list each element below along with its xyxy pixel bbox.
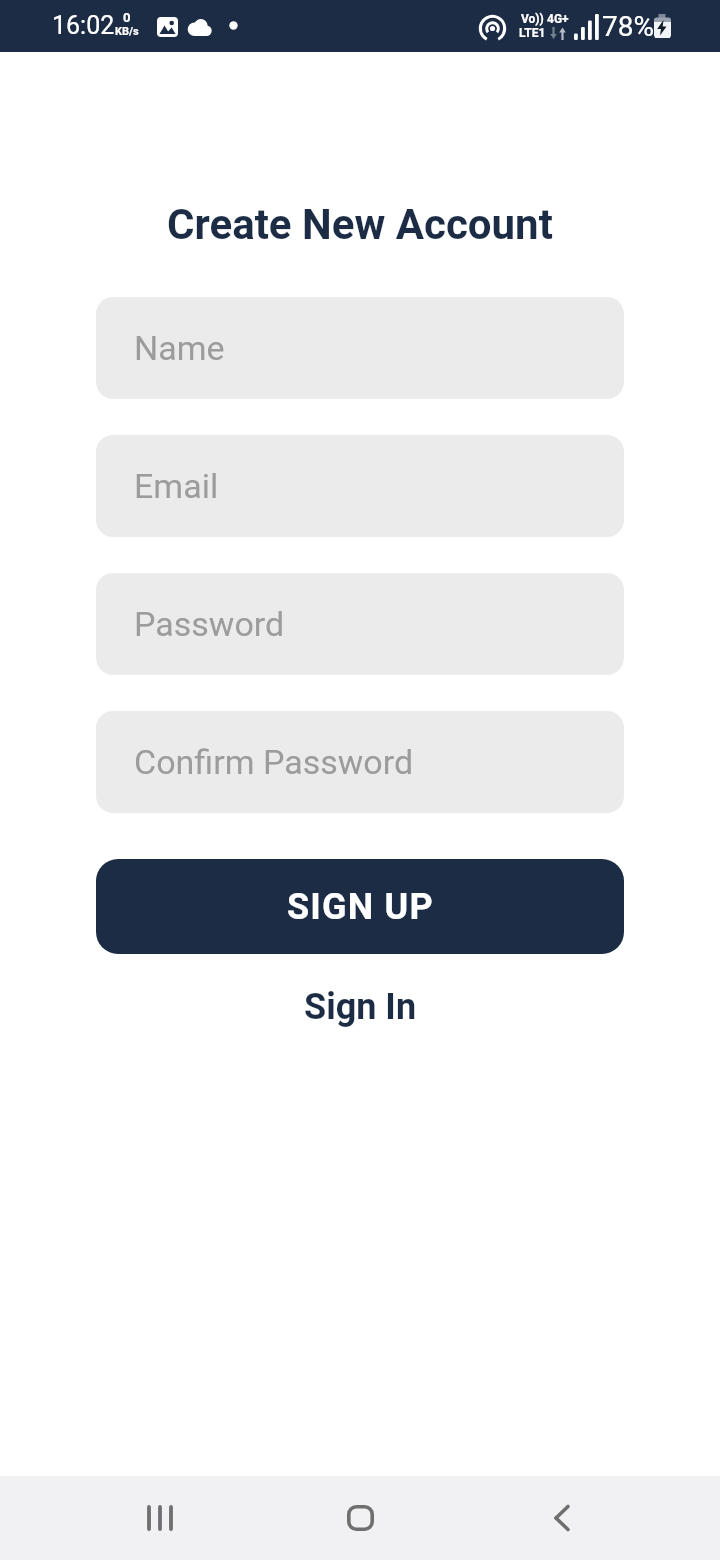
button[interactable]: Confirm Password xyxy=(96,711,624,813)
staticText: Password xyxy=(134,604,285,644)
staticText: 4G+ xyxy=(547,12,569,26)
staticText: Vo)) xyxy=(521,12,544,26)
staticText: 78% xyxy=(602,10,654,43)
button[interactable]: Name xyxy=(96,297,624,399)
button[interactable] xyxy=(310,1476,410,1560)
button[interactable] xyxy=(512,1476,612,1560)
staticText: Email xyxy=(134,466,219,506)
button[interactable]: SIGN UP xyxy=(96,859,624,954)
staticText: Sign In xyxy=(304,986,417,1028)
button[interactable]: Password xyxy=(96,573,624,675)
button[interactable]: Sign In xyxy=(288,980,433,1034)
staticText: Confirm Password xyxy=(134,742,414,782)
staticText: KB/s xyxy=(115,25,139,38)
staticText: Create New Account xyxy=(167,200,553,249)
button[interactable] xyxy=(110,1476,210,1560)
button[interactable]: Email xyxy=(96,435,624,537)
staticText: 16:02 xyxy=(52,11,115,40)
staticText: LTE1 xyxy=(519,26,546,40)
staticText: Name xyxy=(134,328,225,368)
staticText: 0 xyxy=(123,10,131,25)
staticText: SIGN UP xyxy=(287,886,434,928)
